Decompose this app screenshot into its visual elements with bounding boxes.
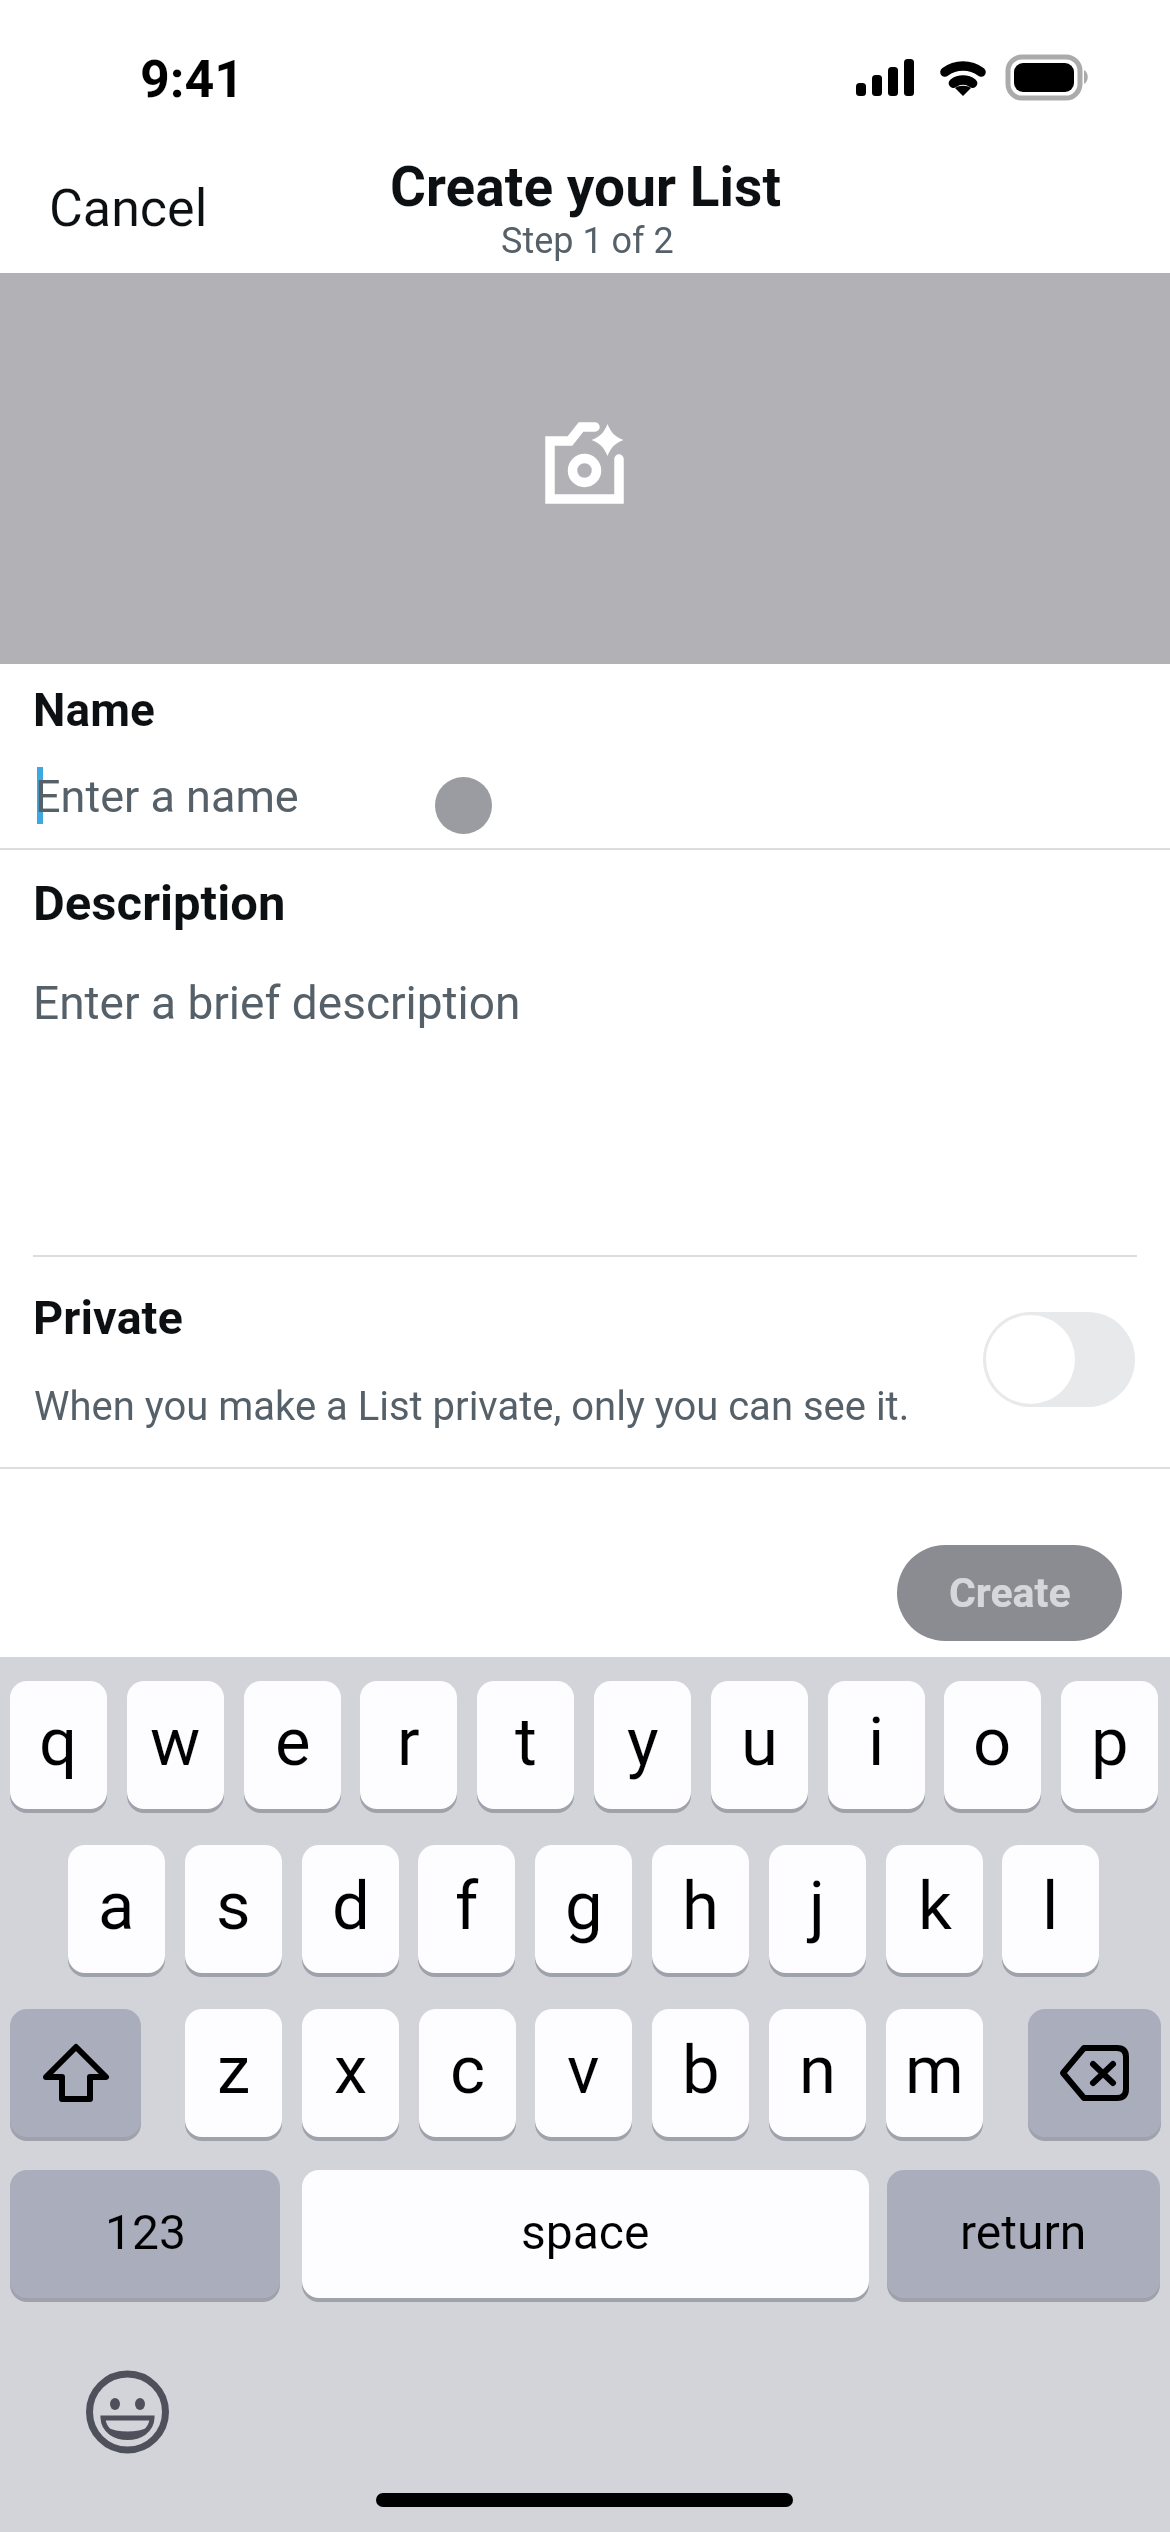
- button[interactable]: Add banner photo: [0, 273, 1170, 664]
- button[interactable]: b: [652, 2009, 749, 2137]
- staticText: j: [809, 1867, 826, 1946]
- button[interactable]: i: [828, 1681, 925, 1809]
- button[interactable]: s: [185, 1845, 282, 1973]
- staticText: e: [275, 1703, 311, 1782]
- staticText: Step 1 of 2: [501, 220, 674, 262]
- button[interactable]: [0, 757, 1170, 848]
- staticText: Description: [33, 875, 286, 932]
- staticText: s: [216, 1867, 251, 1946]
- staticText: f: [455, 1867, 479, 1946]
- staticText: w: [150, 1703, 201, 1782]
- staticText: Name: [33, 683, 155, 737]
- button[interactable]: p: [1061, 1681, 1158, 1809]
- staticText: Create your List: [390, 155, 781, 219]
- button[interactable]: v: [535, 2009, 632, 2137]
- button[interactable]: o: [944, 1681, 1041, 1809]
- button[interactable]: Shift: [10, 2009, 141, 2137]
- button[interactable]: u: [711, 1681, 808, 1809]
- staticText: space: [521, 2204, 650, 2260]
- staticText: c: [450, 2031, 486, 2110]
- staticText: b: [682, 2031, 720, 2110]
- button[interactable]: y: [594, 1681, 691, 1809]
- staticText: x: [334, 2031, 368, 2110]
- staticText: p: [1091, 1703, 1129, 1782]
- staticText: v: [567, 2031, 600, 2110]
- staticText: l: [1042, 1867, 1059, 1946]
- button[interactable]: r: [360, 1681, 457, 1809]
- button[interactable]: f: [418, 1845, 515, 1973]
- button[interactable]: m: [886, 2009, 983, 2137]
- button[interactable]: Create: [897, 1545, 1122, 1641]
- staticText: r: [397, 1703, 420, 1782]
- button[interactable]: j: [769, 1845, 866, 1973]
- staticText: o: [973, 1703, 1012, 1782]
- button[interactable]: space: [302, 2170, 869, 2298]
- staticText: Private: [33, 1290, 183, 1345]
- button[interactable]: [0, 955, 1170, 1250]
- button[interactable]: 123: [10, 2170, 280, 2298]
- staticText: h: [682, 1867, 719, 1946]
- button[interactable]: l: [1002, 1845, 1099, 1973]
- staticText: i: [868, 1703, 885, 1782]
- button[interactable]: Cancel: [9, 160, 248, 257]
- button[interactable]: d: [302, 1845, 399, 1973]
- staticText: y: [627, 1703, 659, 1782]
- staticText: u: [741, 1703, 778, 1782]
- button[interactable]: Backspace: [1028, 2009, 1161, 2137]
- button[interactable]: a: [68, 1845, 165, 1973]
- staticText: 123: [105, 2204, 186, 2260]
- button[interactable]: e: [244, 1681, 341, 1809]
- staticText: Enter a brief description: [33, 976, 521, 1030]
- button[interactable]: c: [419, 2009, 516, 2137]
- button[interactable]: Emoji keyboard: [86, 2371, 169, 2454]
- button[interactable]: w: [127, 1681, 224, 1809]
- button[interactable]: t: [477, 1681, 574, 1809]
- button[interactable]: h: [652, 1845, 749, 1973]
- button[interactable]: g: [535, 1845, 632, 1973]
- staticText: Create: [949, 1569, 1071, 1617]
- staticText: t: [515, 1703, 537, 1782]
- staticText: k: [918, 1867, 952, 1946]
- staticText: 9:41: [140, 49, 245, 110]
- staticText: q: [39, 1703, 78, 1782]
- staticText: g: [565, 1867, 603, 1946]
- button[interactable]: z: [185, 2009, 282, 2137]
- staticText: z: [217, 2031, 251, 2110]
- button[interactable]: k: [886, 1845, 983, 1973]
- staticText: Cancel: [49, 178, 208, 239]
- button[interactable]: return: [887, 2170, 1160, 2298]
- button[interactable]: Private, off: [983, 1312, 1135, 1407]
- button[interactable]: q: [10, 1681, 107, 1809]
- staticText: Enter a name: [35, 770, 299, 823]
- staticText: d: [332, 1867, 370, 1946]
- staticText: n: [799, 2031, 837, 2110]
- staticText: When you make a List private, only you c…: [34, 1383, 910, 1430]
- staticText: return: [960, 2204, 1087, 2260]
- staticText: m: [905, 2031, 964, 2110]
- button[interactable]: n: [769, 2009, 866, 2137]
- button[interactable]: x: [302, 2009, 399, 2137]
- staticText: a: [98, 1867, 135, 1946]
